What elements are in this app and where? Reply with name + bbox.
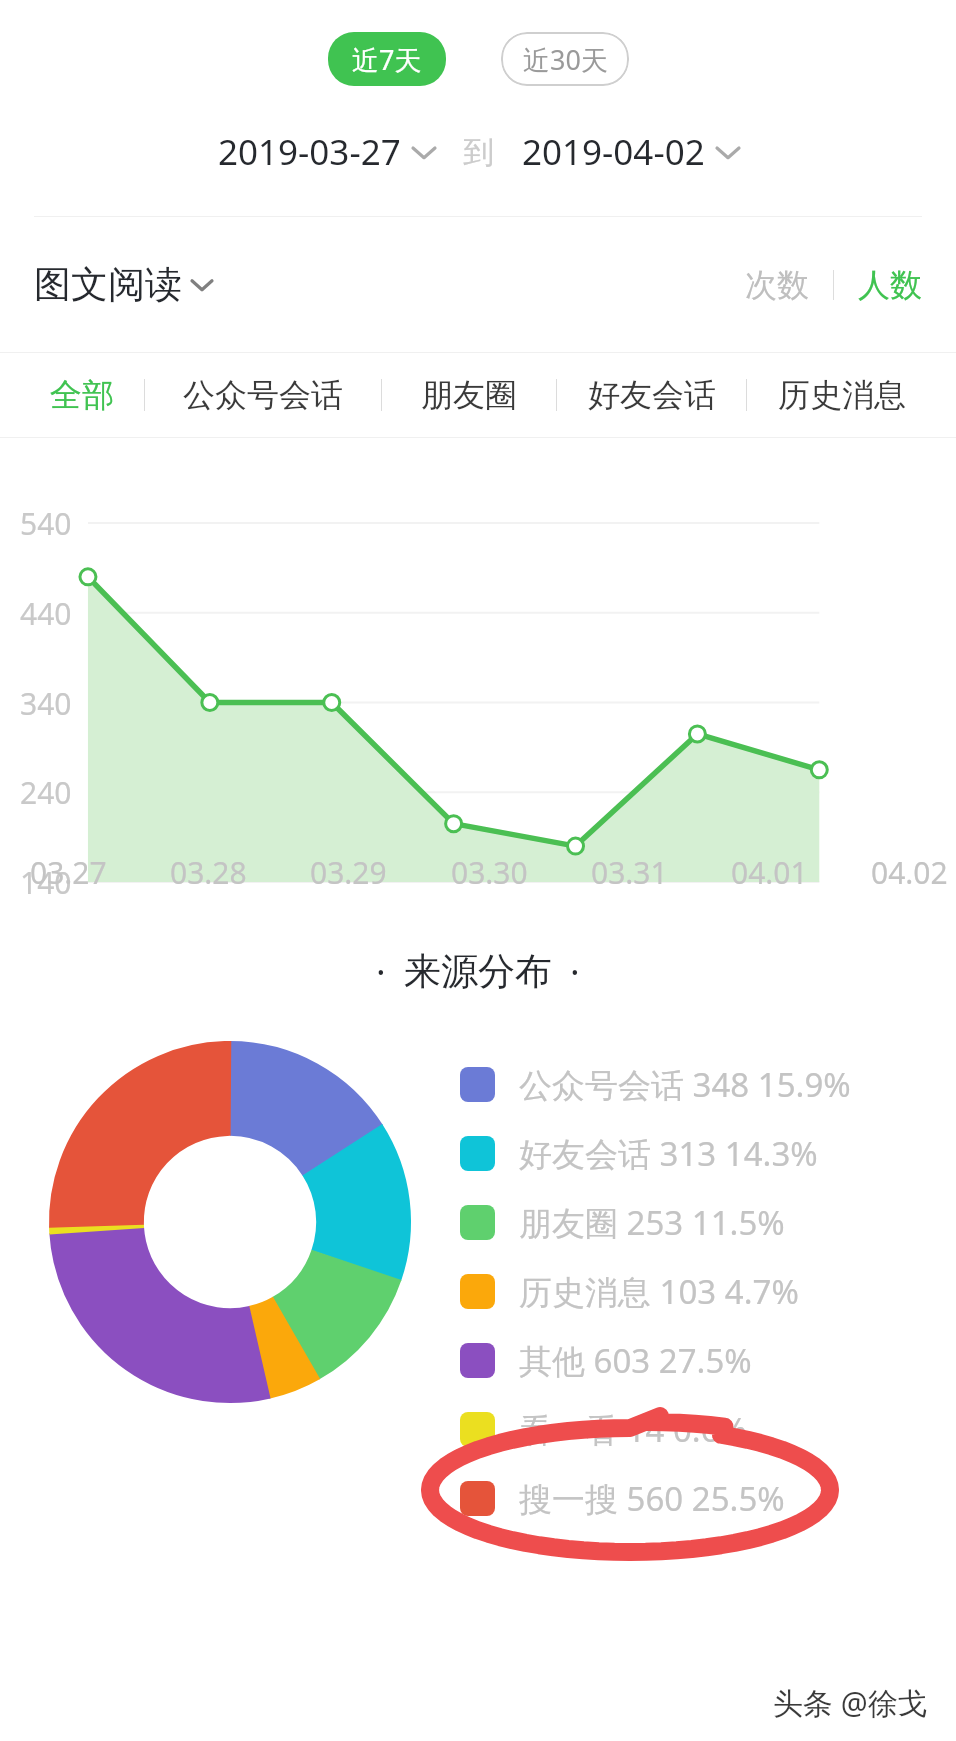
- staticText: 440: [20, 593, 72, 634]
- staticText: 140: [20, 862, 72, 903]
- button[interactable]: 近7天: [328, 32, 446, 86]
- button[interactable]: 近30天: [501, 32, 629, 86]
- staticText: 04.02: [871, 852, 948, 893]
- staticText: 朋友圈: [421, 375, 517, 415]
- staticText: 看一看 14 0.6%: [519, 1407, 747, 1452]
- button[interactable]: 全部: [20, 353, 144, 437]
- staticText: 03.27: [30, 852, 107, 893]
- button[interactable]: 朋友圈 253 11.5%: [460, 1188, 956, 1257]
- button[interactable]: 搜一搜 560 25.5%: [460, 1464, 956, 1533]
- staticText: 近7天: [352, 41, 422, 78]
- button[interactable]: 好友会话: [557, 353, 746, 437]
- button[interactable]: 好友会话 313 14.3%: [460, 1119, 956, 1188]
- button[interactable]: 图文阅读: [34, 261, 212, 308]
- staticText: 03.29: [310, 852, 387, 893]
- button[interactable]: 历史消息 103 4.7%: [460, 1257, 956, 1326]
- staticText: 其他 603 27.5%: [519, 1338, 752, 1383]
- staticText: 全部: [50, 375, 114, 415]
- staticText: 头条 @徐戈: [773, 1682, 928, 1723]
- staticText: 次数: [745, 265, 809, 305]
- button[interactable]: 公众号会话: [145, 353, 381, 437]
- staticText: 到: [463, 133, 494, 172]
- staticText: 04.01: [731, 852, 808, 893]
- staticText: 来源分布: [404, 948, 552, 995]
- button[interactable]: 2019-03-27: [218, 128, 435, 176]
- button[interactable]: 公众号会话 348 15.9%: [460, 1050, 956, 1119]
- staticText: ·: [376, 947, 386, 996]
- staticText: 历史消息: [778, 375, 906, 415]
- staticText: 公众号会话: [183, 375, 343, 415]
- staticText: 好友会话: [588, 375, 716, 415]
- button[interactable]: 次数: [745, 265, 809, 305]
- staticText: ·: [570, 947, 580, 996]
- staticText: 搜一搜 560 25.5%: [519, 1476, 785, 1521]
- button[interactable]: 看一看 14 0.6%: [460, 1395, 956, 1464]
- staticText: 公众号会话 348 15.9%: [519, 1062, 851, 1107]
- button[interactable]: 人数: [858, 265, 922, 305]
- button[interactable]: 其他 603 27.5%: [460, 1326, 956, 1395]
- staticText: 朋友圈 253 11.5%: [519, 1200, 785, 1245]
- button[interactable]: 朋友圈: [382, 353, 556, 437]
- staticText: 2019-03-27: [218, 128, 401, 176]
- staticText: 近30天: [523, 41, 608, 78]
- staticText: 240: [20, 772, 72, 813]
- staticText: 540: [20, 503, 72, 544]
- staticText: 好友会话 313 14.3%: [519, 1131, 818, 1176]
- staticText: 340: [20, 683, 72, 724]
- staticText: 03.28: [170, 852, 247, 893]
- button[interactable]: 历史消息: [747, 353, 936, 437]
- button[interactable]: 2019-04-02: [522, 128, 739, 176]
- staticText: 03.31: [591, 852, 668, 893]
- staticText: 2019-04-02: [522, 128, 705, 176]
- staticText: 图文阅读: [34, 261, 182, 308]
- staticText: 03.30: [451, 852, 528, 893]
- staticText: 人数: [858, 265, 922, 305]
- staticText: 历史消息 103 4.7%: [519, 1269, 799, 1314]
